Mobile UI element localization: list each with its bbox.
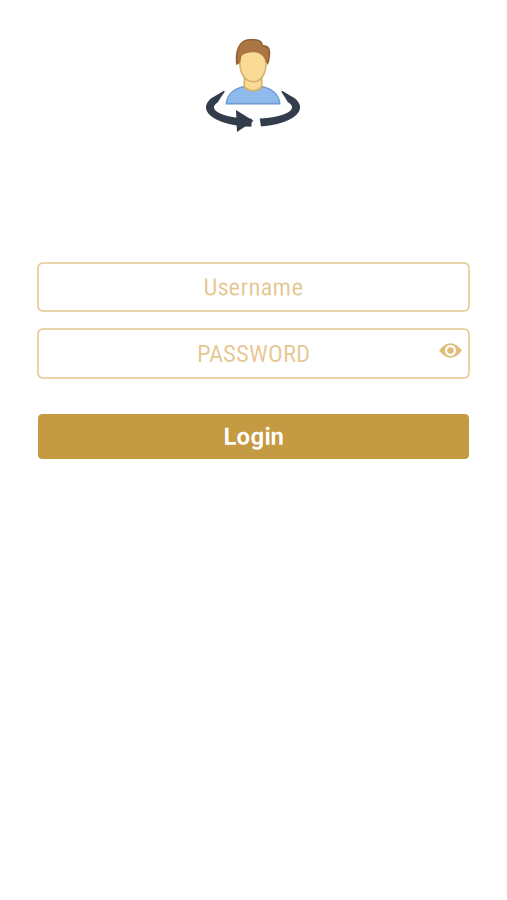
staticText: PASSWORD bbox=[197, 339, 310, 368]
button[interactable]: Login bbox=[38, 414, 469, 459]
staticText: Username bbox=[203, 272, 303, 301]
button[interactable]: Username bbox=[38, 263, 469, 311]
staticText: Login bbox=[223, 422, 283, 450]
button[interactable]: Show password bbox=[432, 330, 469, 376]
button[interactable]: PASSWORD bbox=[38, 329, 469, 378]
